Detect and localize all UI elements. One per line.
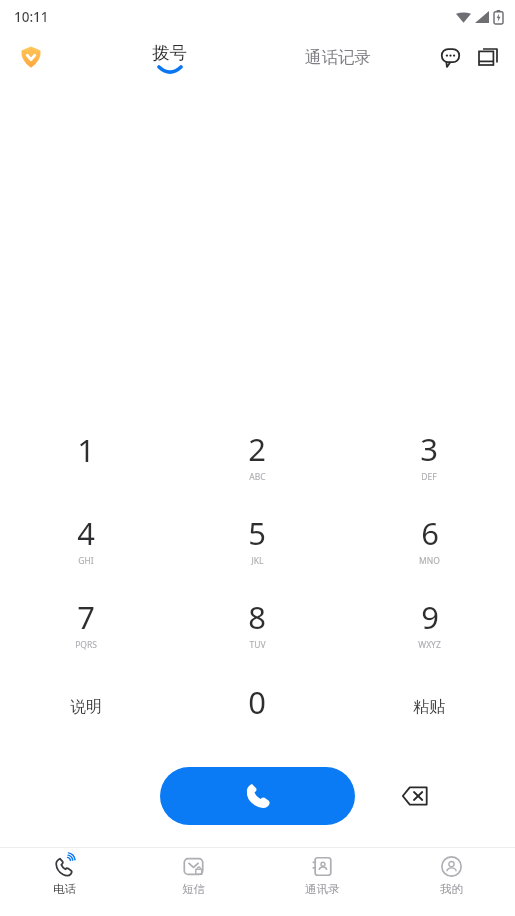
staticText: TUV bbox=[249, 639, 266, 651]
staticText: 2 bbox=[248, 428, 266, 470]
staticText: 粘贴 bbox=[413, 697, 445, 717]
button[interactable]: 4 bbox=[0, 497, 171, 581]
button[interactable]: 删除 bbox=[389, 767, 441, 825]
staticText: 3 bbox=[420, 428, 438, 470]
button[interactable]: 拨号 bbox=[128, 33, 210, 81]
staticText: DEF bbox=[421, 471, 437, 483]
button[interactable]: 说明 bbox=[0, 665, 171, 749]
staticText: ABC bbox=[249, 471, 266, 483]
button[interactable]: 短信 bbox=[129, 848, 258, 916]
staticText: MNO bbox=[419, 555, 440, 567]
staticText: JKL bbox=[251, 555, 264, 567]
staticText: 4 bbox=[77, 512, 95, 554]
staticText: PQRS bbox=[75, 639, 97, 651]
button[interactable]: 6 bbox=[343, 497, 515, 581]
staticText: 说明 bbox=[70, 697, 102, 717]
staticText: 通话记录 bbox=[305, 47, 371, 68]
button[interactable]: 2 bbox=[171, 413, 343, 497]
button[interactable]: 通讯录 bbox=[258, 848, 387, 916]
button[interactable]: 电话 bbox=[0, 848, 129, 916]
staticText: 我的 bbox=[440, 882, 463, 896]
staticText: GHI bbox=[78, 555, 94, 567]
staticText: 9 bbox=[421, 596, 439, 638]
staticText: 电话 bbox=[53, 882, 76, 896]
staticText: 7 bbox=[77, 596, 95, 638]
button[interactable]: 3 bbox=[343, 413, 515, 497]
staticText: WXYZ bbox=[418, 639, 441, 651]
staticText: 短信 bbox=[182, 882, 205, 896]
button[interactable]: 5 bbox=[171, 497, 343, 581]
button[interactable]: 名片夹 bbox=[469, 38, 507, 76]
button[interactable]: 短信 bbox=[431, 38, 469, 76]
staticText: 5 bbox=[248, 512, 266, 554]
button[interactable]: 通话记录 bbox=[286, 33, 390, 81]
staticText: 8 bbox=[248, 596, 266, 638]
button[interactable]: 拨打电话 bbox=[160, 767, 355, 825]
button[interactable]: 8 bbox=[171, 581, 343, 665]
staticText: 0 bbox=[248, 681, 266, 723]
button[interactable]: 安全防护 bbox=[14, 40, 48, 74]
button[interactable]: 7 bbox=[0, 581, 171, 665]
button[interactable]: 0 bbox=[171, 665, 343, 749]
staticText: 通讯录 bbox=[305, 882, 340, 896]
button[interactable]: 粘贴 bbox=[343, 665, 515, 749]
staticText: 6 bbox=[421, 512, 439, 554]
staticText: 拨号 bbox=[152, 42, 187, 64]
staticText: 10:11 bbox=[14, 8, 49, 26]
staticText: 1 bbox=[77, 429, 95, 471]
button[interactable]: 9 bbox=[343, 581, 515, 665]
button[interactable]: 我的 bbox=[387, 848, 515, 916]
button[interactable]: 1 bbox=[0, 413, 171, 497]
